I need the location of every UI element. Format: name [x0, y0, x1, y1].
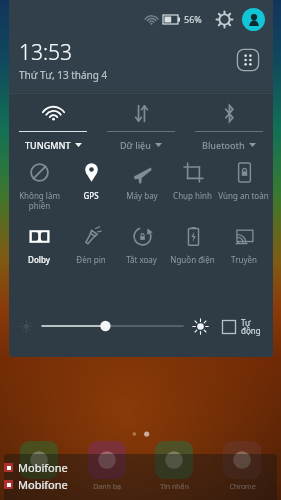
button[interactable]: TUNGMNT: [9, 100, 97, 151]
button[interactable]: User profile: [242, 8, 265, 31]
staticText: Điện thoại: [22, 482, 56, 492]
staticText: 56%: [184, 13, 202, 25]
button[interactable]: Settings: [212, 7, 236, 31]
staticText: GPS: [83, 190, 99, 201]
staticText: Tin nhắn: [160, 482, 189, 492]
staticText: Mobifone: [18, 460, 68, 475]
staticText: Chụp hình: [173, 190, 212, 201]
button[interactable]: Chụp hình: [167, 157, 218, 203]
staticText: Dữ liệu: [120, 139, 151, 151]
button[interactable]: Dữ liệu: [97, 100, 185, 151]
staticText: Nguồn điện: [170, 254, 215, 265]
button[interactable]: Tin nhắn: [143, 441, 205, 492]
button[interactable]: GPS: [65, 157, 116, 203]
staticText: Không làm phiền: [19, 190, 60, 211]
button[interactable]: Truyền: [218, 221, 269, 267]
button[interactable]: Điện thoại: [8, 441, 70, 492]
staticText: Chrome: [229, 482, 256, 492]
button[interactable]: Vùng an toàn: [218, 157, 269, 203]
button[interactable]: Danh bạ: [76, 441, 138, 492]
staticText: Máy bay: [126, 190, 158, 201]
staticText: Mobifone: [18, 477, 68, 492]
button[interactable]: Nguồn điện: [167, 221, 218, 267]
button[interactable]: Brightness: [42, 315, 183, 337]
button[interactable]: All settings: [233, 45, 263, 75]
staticText: Vùng an toàn: [218, 190, 269, 201]
button[interactable]: Mobifone: [4, 460, 277, 475]
staticText: TUNGMNT: [25, 139, 71, 151]
button[interactable]: Không làm phiền: [13, 157, 65, 213]
staticText: 13:53: [19, 38, 73, 67]
button[interactable]: Mobifone: [4, 477, 277, 492]
button[interactable]: Chrome: [211, 441, 273, 492]
staticText: Truyền: [231, 254, 257, 265]
staticText: Đèn pin: [76, 254, 106, 265]
button[interactable]: Dolby: [13, 221, 65, 267]
staticText: Bluetooth: [202, 139, 245, 151]
staticText: Tự động: [241, 317, 261, 336]
staticText: Danh bạ: [93, 482, 121, 492]
staticText: Dolby: [28, 254, 50, 265]
button[interactable]: Máy bay: [116, 157, 167, 203]
staticText: Tắt xoay: [126, 254, 157, 265]
button[interactable]: Bluetooth: [185, 100, 273, 151]
button[interactable]: Tắt xoay: [116, 221, 167, 267]
button[interactable]: Tự động: [222, 317, 261, 336]
staticText: Thứ Tư, 13 tháng 4: [19, 68, 108, 82]
button[interactable]: Đèn pin: [65, 221, 116, 267]
